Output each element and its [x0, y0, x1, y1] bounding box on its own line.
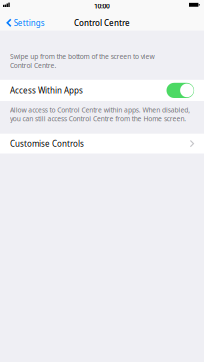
staticText: Allow access to Control Centre within ap…	[10, 105, 190, 123]
staticText: Control Centre	[74, 17, 130, 28]
staticText: Settings	[14, 17, 45, 28]
staticText: Customise Controls	[10, 138, 84, 149]
staticText: Access Within Apps	[10, 85, 83, 96]
button[interactable]: Access Within Apps	[0, 80, 204, 101]
staticText: 10:00	[94, 2, 110, 10]
button[interactable]: Settings	[0, 15, 49, 31]
button[interactable]: Customise Controls	[0, 134, 204, 153]
staticText: Swipe up from the bottom of the screen t…	[10, 52, 154, 70]
